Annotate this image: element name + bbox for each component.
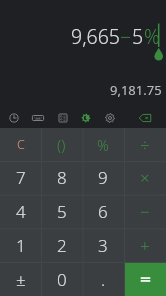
button[interactable]: 3 xyxy=(82,228,124,262)
staticText: 2 xyxy=(57,234,67,257)
button[interactable]: 2 xyxy=(41,228,82,262)
button[interactable]: 5 xyxy=(41,194,82,228)
staticText: 9 xyxy=(98,166,108,189)
staticText: 7 xyxy=(16,166,26,189)
staticText: . xyxy=(101,268,106,291)
staticText: 5 xyxy=(132,23,144,50)
staticText: 5 xyxy=(57,200,67,223)
staticText: 6 xyxy=(98,200,108,223)
staticText: ÷ xyxy=(140,133,150,156)
button[interactable]: 1 xyxy=(0,228,41,262)
button[interactable]: 6 xyxy=(82,194,124,228)
button[interactable]: . xyxy=(82,262,124,296)
button[interactable]: Settings xyxy=(99,107,121,129)
button[interactable]: 9 xyxy=(82,161,124,194)
staticText: 0 xyxy=(57,268,67,291)
staticText: 3 xyxy=(98,234,108,257)
staticText: () xyxy=(57,135,66,155)
staticText: − xyxy=(140,200,150,223)
button[interactable]: () xyxy=(41,128,82,161)
staticText: ± xyxy=(16,268,26,291)
button[interactable]: C xyxy=(0,128,41,161)
button[interactable] xyxy=(124,262,166,296)
button[interactable]: History xyxy=(3,107,25,129)
button[interactable]: Equals xyxy=(125,263,166,296)
button[interactable]: 8 xyxy=(41,161,82,194)
button[interactable]: ÷ xyxy=(124,128,166,161)
staticText: × xyxy=(140,166,150,189)
button[interactable]: Matrix xyxy=(52,107,74,129)
button[interactable]: 0 xyxy=(41,262,82,296)
staticText: 9,181.75 xyxy=(110,81,162,99)
button[interactable]: % xyxy=(82,128,124,161)
button[interactable]: Keyboard xyxy=(27,107,49,129)
staticText: 1 xyxy=(16,234,26,257)
button[interactable]: Backspace xyxy=(134,107,156,129)
staticText: % xyxy=(97,135,109,155)
button[interactable]: × xyxy=(124,161,166,194)
button[interactable]: ± xyxy=(0,262,41,296)
staticText: − xyxy=(120,23,132,50)
button[interactable]: Theme xyxy=(75,107,97,129)
staticText: C xyxy=(17,136,25,153)
staticText: 8 xyxy=(57,166,67,189)
staticText: 9,665 xyxy=(71,23,120,50)
button[interactable]: − xyxy=(124,194,166,228)
button[interactable]: 4 xyxy=(0,194,41,228)
button[interactable]: 7 xyxy=(0,161,41,194)
staticText: + xyxy=(140,234,150,257)
staticText: 4 xyxy=(16,200,26,223)
staticText: % xyxy=(144,23,160,50)
button[interactable]: + xyxy=(124,228,166,262)
